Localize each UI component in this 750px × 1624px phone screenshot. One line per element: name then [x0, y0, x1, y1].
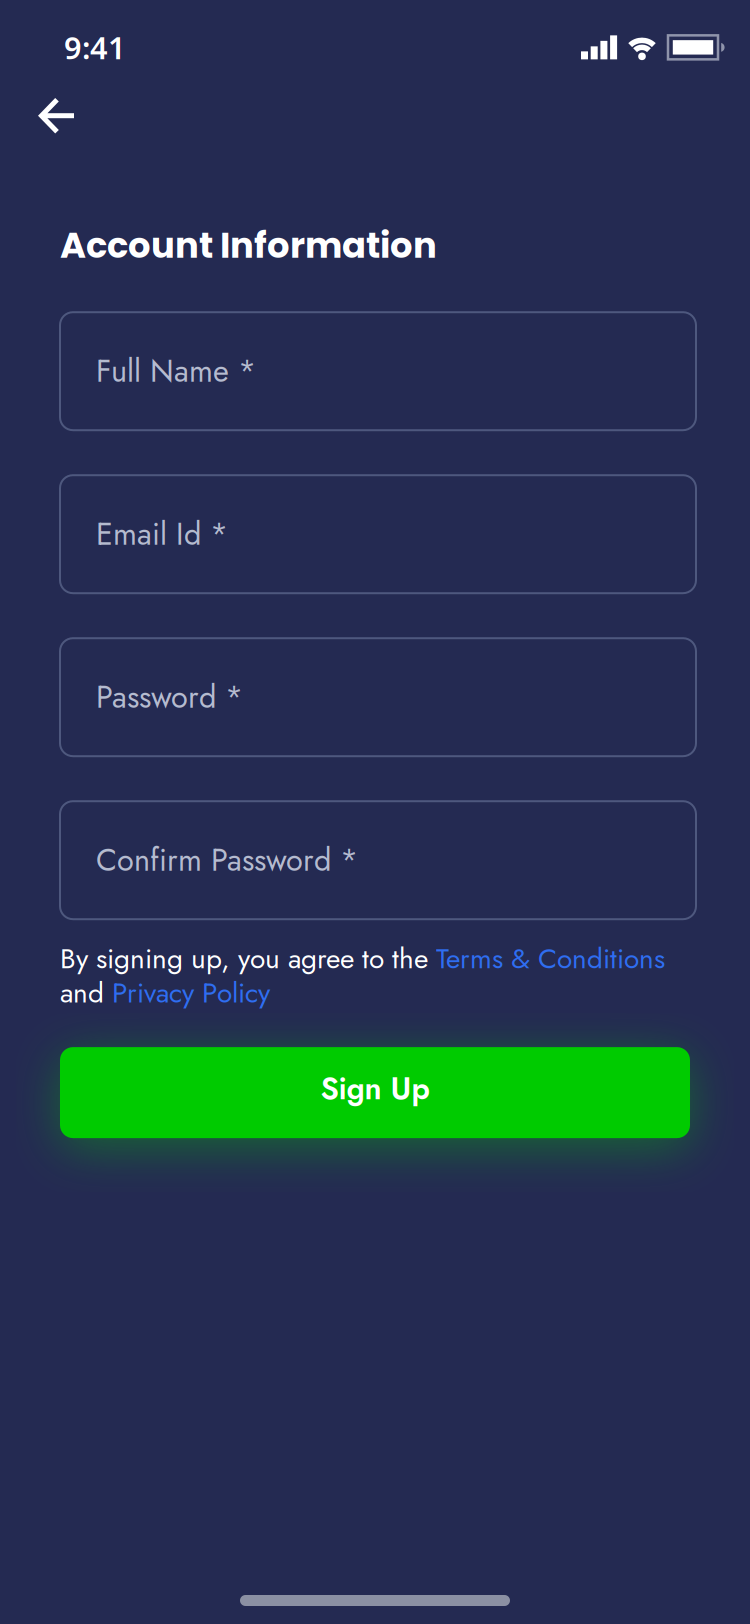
- staticText: Full Name *: [96, 349, 256, 393]
- button[interactable]: Password *: [60, 638, 696, 756]
- staticText: and: [60, 973, 112, 1013]
- button[interactable]: Back: [0, 98, 76, 134]
- button[interactable]: Email Id *: [60, 475, 696, 593]
- button[interactable]: Sign Up: [60, 1047, 690, 1138]
- staticText: Account Information: [60, 221, 437, 270]
- staticText: Email Id *: [96, 512, 228, 556]
- staticText: 9:41: [64, 27, 126, 68]
- button[interactable]: Privacy Policy: [112, 973, 270, 1013]
- staticText: Terms & Conditions: [436, 938, 665, 979]
- staticText: Privacy Policy: [112, 973, 270, 1013]
- staticText: Password *: [96, 675, 243, 719]
- button[interactable]: Terms & Conditions: [436, 938, 665, 979]
- button[interactable]: Full Name *: [60, 312, 696, 430]
- staticText: By signing up, you agree to the: [60, 938, 436, 979]
- button[interactable]: Confirm Password *: [60, 801, 696, 919]
- staticText: Sign Up: [320, 1066, 429, 1111]
- staticText: Confirm Password *: [96, 838, 358, 882]
